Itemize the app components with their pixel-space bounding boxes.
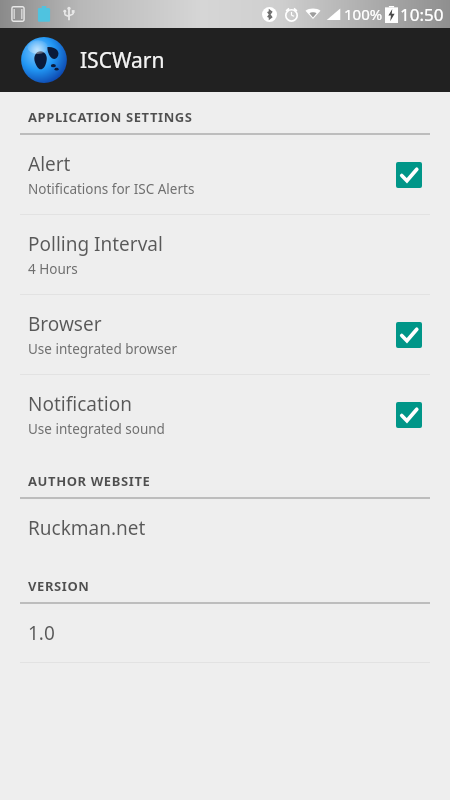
button[interactable]: Browser	[0, 295, 450, 374]
staticText: 1.0	[28, 620, 55, 646]
staticText: Notification	[28, 391, 132, 417]
button[interactable]: Toggle Browser	[392, 318, 426, 352]
staticText: APPLICATION SETTINGS	[28, 108, 193, 126]
staticText: VERSION	[28, 577, 90, 595]
staticText: Alert	[28, 151, 71, 177]
staticText: 100%	[344, 4, 383, 24]
staticText: Notifications for ISC Alerts	[28, 180, 195, 198]
staticText: Use integrated sound	[28, 420, 165, 438]
button[interactable]: Toggle Alert	[392, 158, 426, 192]
staticText: ISCWarn	[80, 46, 165, 75]
staticText: 4 Hours	[28, 260, 78, 278]
staticText: 10:50	[400, 3, 444, 26]
button[interactable]: Alert	[0, 135, 450, 214]
button[interactable]: 1.0	[0, 604, 450, 662]
button[interactable]: Ruckman.net	[0, 499, 450, 557]
button[interactable]: Polling Interval	[0, 215, 450, 294]
staticText: Use integrated browser	[28, 340, 178, 358]
staticText: Ruckman.net	[28, 515, 146, 541]
staticText: Polling Interval	[28, 231, 163, 257]
staticText: AUTHOR WEBSITE	[28, 472, 151, 490]
button[interactable]: Toggle Notification	[392, 398, 426, 432]
button[interactable]: Notification	[0, 375, 450, 454]
staticText: Browser	[28, 311, 102, 337]
